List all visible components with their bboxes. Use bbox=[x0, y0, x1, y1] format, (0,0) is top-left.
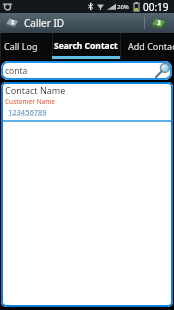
staticText: Search Contact bbox=[54, 40, 118, 52]
button[interactable]: Add Contact bbox=[120, 33, 174, 60]
staticText: 00:19 bbox=[143, 0, 169, 13]
button[interactable]: conta bbox=[1, 61, 172, 80]
staticText: Customer Name bbox=[5, 97, 55, 106]
staticText: 123456789 bbox=[8, 107, 47, 117]
staticText: Contact Name bbox=[5, 84, 66, 96]
staticText: 26% bbox=[117, 3, 129, 11]
staticText: conta bbox=[5, 65, 28, 77]
staticText: Caller ID bbox=[24, 16, 65, 30]
button[interactable]: Search Contact bbox=[52, 33, 120, 60]
button[interactable]: Contact Name bbox=[1, 82, 173, 122]
other: Search bbox=[153, 62, 171, 80]
staticText: Add Contact bbox=[128, 40, 174, 52]
staticText: Call Log bbox=[4, 40, 38, 52]
button[interactable]: Add contact bbox=[145, 13, 171, 33]
button[interactable]: Call Log bbox=[0, 33, 52, 60]
